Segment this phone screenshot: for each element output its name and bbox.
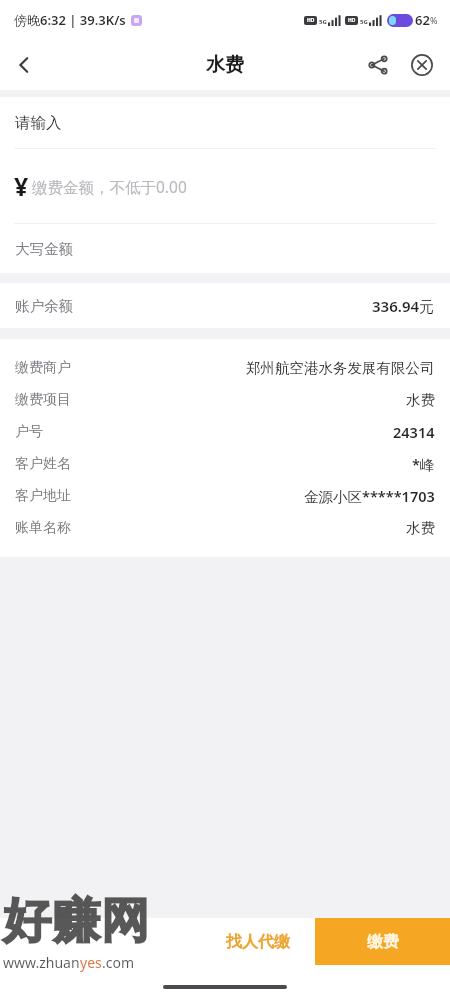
staticText: 5G: [360, 18, 368, 26]
staticText: 网: [101, 891, 149, 951]
staticText: 客户地址: [15, 487, 71, 505]
staticText: 336.94元: [372, 296, 435, 316]
staticText: 5G: [319, 18, 327, 26]
staticText: www.zhuan: [3, 953, 80, 972]
staticText: 好: [3, 891, 51, 951]
button[interactable]: 找人代缴: [200, 918, 315, 965]
staticText: 缴费项目: [15, 391, 71, 409]
staticText: 请输入: [15, 113, 62, 133]
button[interactable]: 客户姓名: [0, 448, 450, 480]
staticText: 傍晚6:32 | 39.3K/s: [14, 11, 126, 29]
staticText: 账户余额: [15, 297, 73, 315]
staticText: 账单名称: [15, 519, 71, 537]
button[interactable]: 请输入: [0, 97, 450, 148]
staticText: 找人代缴: [226, 932, 290, 952]
staticText: 郑州航空港水务发展有限公司: [246, 359, 435, 377]
button[interactable]: 账户余额: [0, 283, 450, 328]
button[interactable]: 大写金额: [0, 224, 450, 273]
staticText: 缴费商户: [15, 359, 71, 377]
button[interactable]: Share: [356, 43, 400, 87]
staticText: %: [430, 14, 438, 26]
staticText: HD: [348, 17, 356, 24]
staticText: 金源小区*****1703: [304, 486, 435, 506]
staticText: 赚: [52, 891, 100, 951]
staticText: 缴费: [367, 932, 399, 952]
staticText: HD: [307, 17, 315, 24]
staticText: 水费: [406, 519, 435, 537]
button[interactable]: Close: [400, 43, 444, 87]
staticText: .com: [102, 953, 135, 972]
button[interactable]: 缴费: [315, 918, 450, 965]
staticText: yes: [80, 953, 102, 972]
staticText: 62: [415, 11, 430, 29]
button[interactable]: 户号: [0, 416, 450, 448]
staticText: 水费: [206, 53, 244, 77]
staticText: 水费: [406, 391, 435, 409]
button[interactable]: 客户地址: [0, 480, 450, 512]
staticText: 户号: [15, 423, 43, 441]
staticText: 大写金额: [15, 240, 73, 258]
button[interactable]: 账单名称: [0, 512, 450, 544]
staticText: ¥: [14, 169, 29, 203]
staticText: 24314: [393, 422, 435, 442]
button[interactable]: 缴费项目: [0, 384, 450, 416]
button[interactable]: 缴费商户: [0, 352, 450, 384]
staticText: 客户姓名: [15, 455, 71, 473]
button[interactable]: ¥: [0, 149, 450, 223]
staticText: *峰: [412, 454, 435, 474]
button[interactable]: Back: [0, 41, 48, 89]
staticText: 缴费金额，不低于0.00: [32, 176, 187, 197]
